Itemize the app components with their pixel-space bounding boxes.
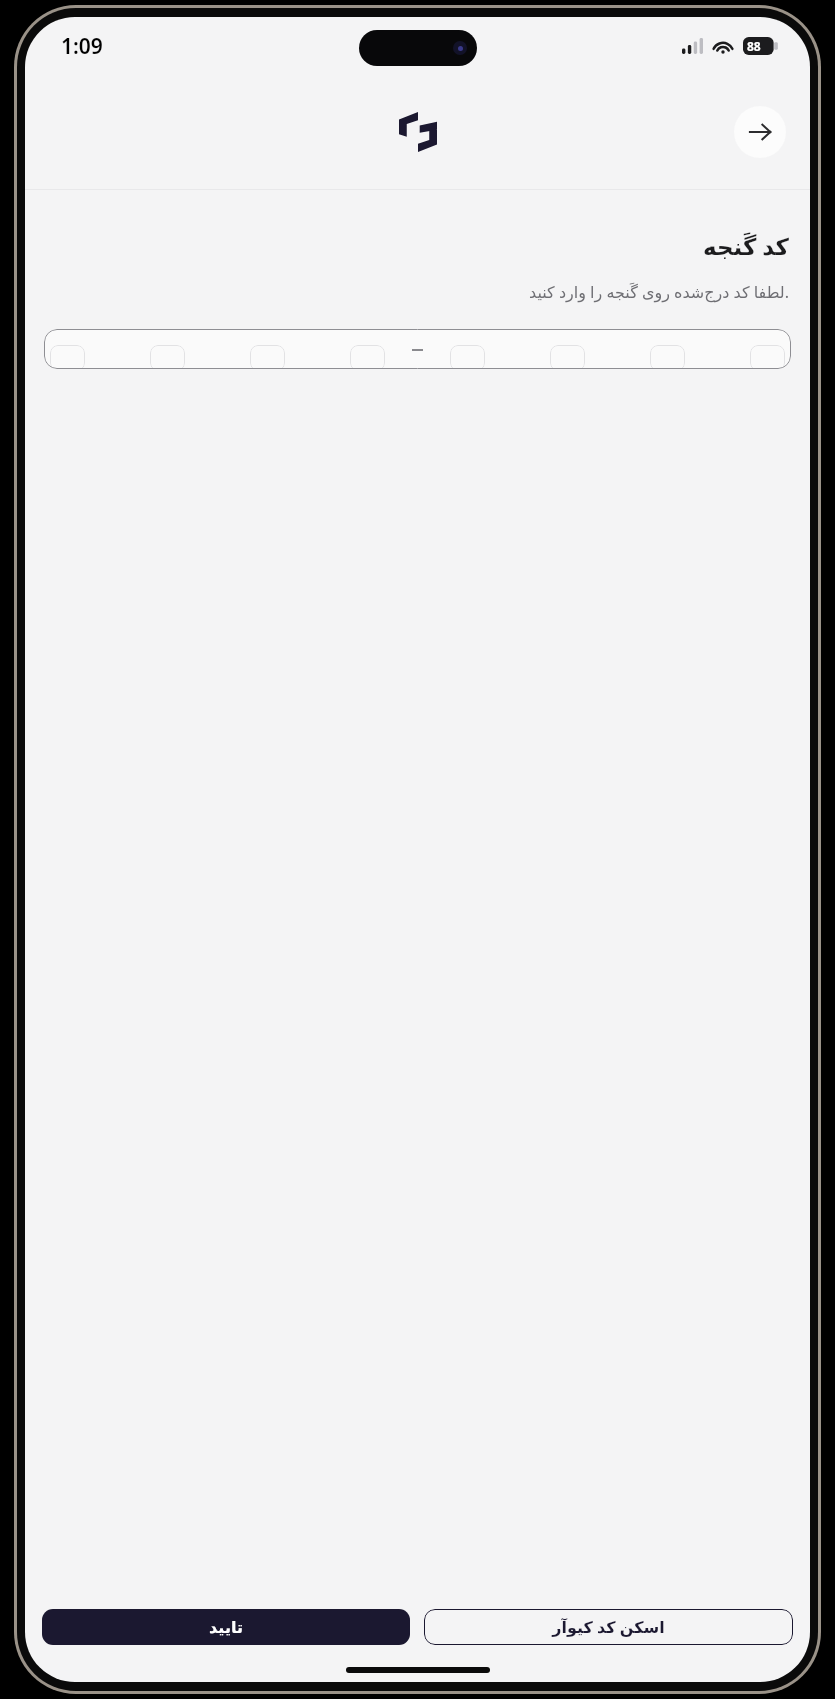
staticText: 1:09 [61, 32, 103, 61]
staticText: کد گَنجه [703, 230, 789, 261]
button[interactable]: تایید [42, 1609, 410, 1645]
staticText: اسکن کد کیوآر [552, 1616, 665, 1638]
button[interactable]: Next [734, 106, 786, 158]
staticText: 88 [747, 38, 761, 54]
staticText: تایید [209, 1618, 243, 1637]
staticText: لطفا کد درج‌شده روی گَنجه را وارد کنید. [529, 281, 789, 303]
button[interactable]: اسکن کد کیوآر [424, 1609, 793, 1645]
button[interactable] [44, 329, 791, 369]
